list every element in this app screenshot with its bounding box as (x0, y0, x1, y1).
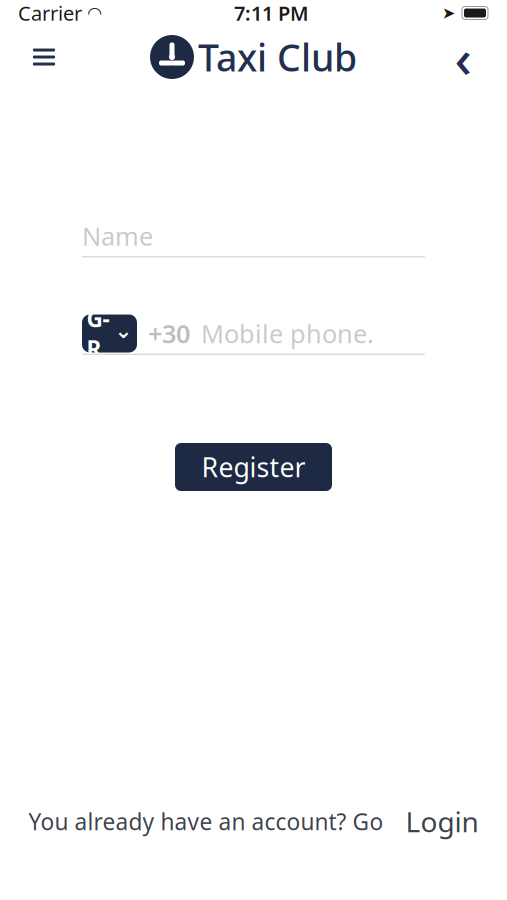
staticText: +30 (148, 317, 190, 350)
staticText: Login (405, 803, 478, 840)
staticText: ⌄ (114, 318, 132, 343)
staticText: ➤ (442, 4, 455, 22)
staticText: 7:11 PM (234, 0, 309, 26)
staticText: ‹ (454, 22, 471, 92)
button[interactable]: Login (405, 803, 478, 840)
button[interactable]: Register (175, 443, 332, 491)
button[interactable]: Select country code (82, 314, 137, 352)
staticText: Name (82, 219, 153, 253)
staticText: Mobile phone. (201, 317, 374, 350)
staticText: ◠ (88, 3, 101, 23)
button[interactable]: Share (441, 35, 485, 79)
staticText: You already have an account? Go (28, 806, 383, 836)
staticText: GR (86, 303, 109, 364)
staticText: Taxi Club (198, 32, 357, 82)
button[interactable]: Menu (22, 35, 66, 79)
staticText: Register (201, 449, 305, 485)
staticText: Carrier (18, 0, 82, 26)
